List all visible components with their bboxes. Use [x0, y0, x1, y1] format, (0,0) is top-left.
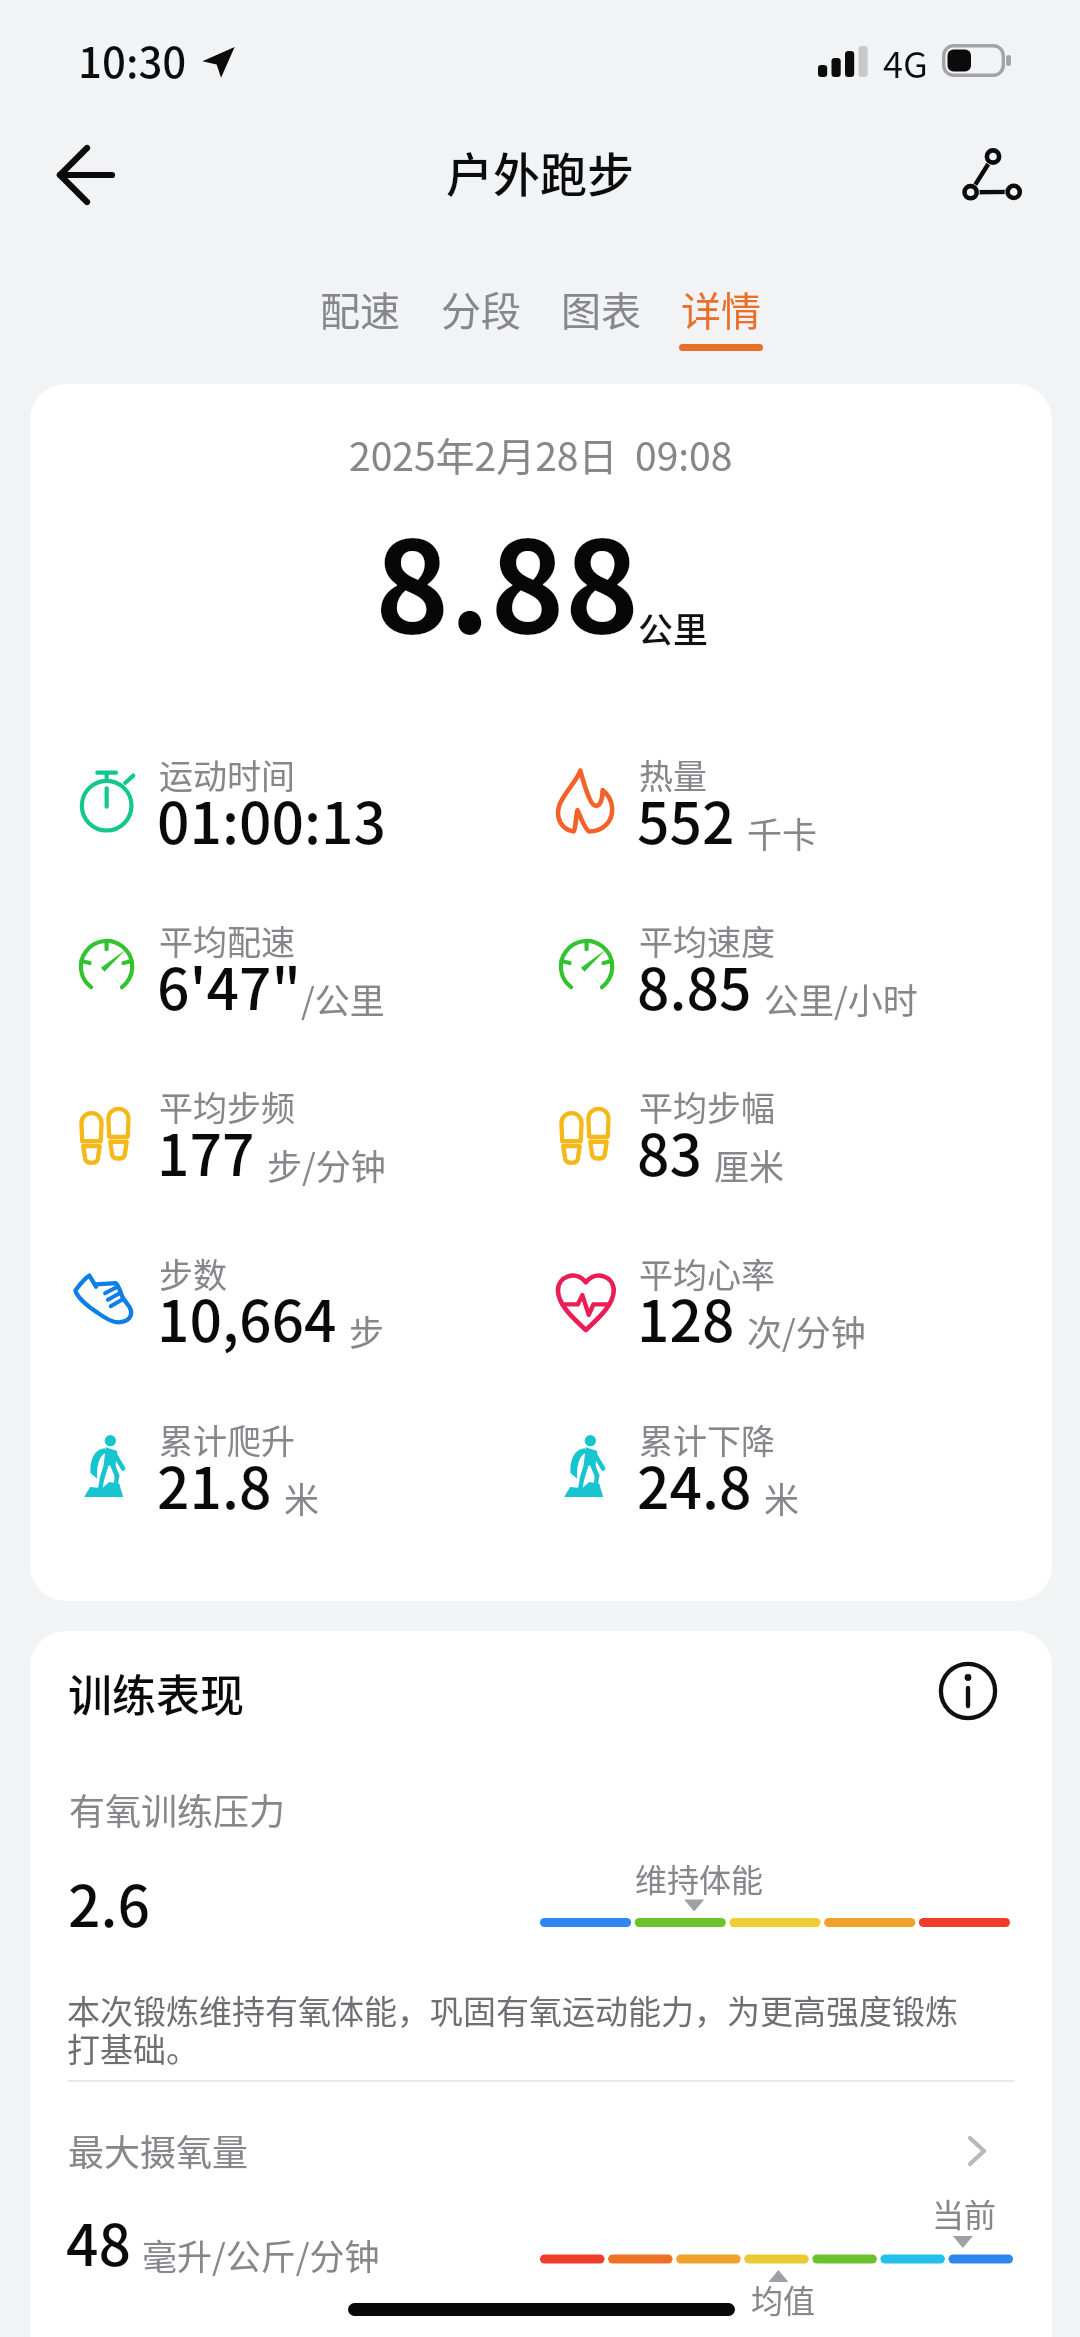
staticText: 米: [284, 1472, 320, 1523]
staticText: 平均步幅: [639, 1082, 775, 1131]
staticText: 步/分钟: [267, 1139, 386, 1190]
staticText: 均值: [751, 2276, 816, 2322]
staticText: 次/分钟: [747, 1305, 866, 1356]
staticText: 步数: [159, 1249, 227, 1298]
staticText: 4G: [883, 36, 928, 88]
staticText: 平均步频: [159, 1082, 295, 1131]
staticText: 10,664: [157, 1276, 337, 1359]
staticText: 累计下降: [639, 1415, 775, 1464]
staticText: 平均心率: [639, 1249, 775, 1298]
staticText: /公里: [301, 973, 385, 1024]
staticText: 8.85: [637, 944, 752, 1027]
staticText: 6'47": [157, 944, 301, 1027]
staticText: 分段: [441, 280, 521, 338]
staticText: 552: [637, 778, 735, 861]
staticText: 详情: [681, 280, 761, 338]
staticText: 最大摄氧量: [68, 2124, 249, 2176]
staticText: 8.88: [375, 487, 639, 669]
staticText: 图表: [561, 280, 641, 338]
staticText: 24.8: [637, 1443, 752, 1526]
staticText: 公里/小时: [764, 973, 918, 1024]
staticText: 公里: [638, 602, 709, 653]
staticText: 有氧训练压力: [69, 1783, 286, 1835]
button[interactable]: Share: [950, 137, 1030, 217]
staticText: 128: [637, 1276, 735, 1359]
button[interactable]: Info: [934, 1657, 1002, 1725]
staticText: 毫升/公斤/分钟: [142, 2229, 380, 2280]
staticText: 01:00:13: [157, 778, 386, 861]
button[interactable]: 最大摄氧量: [68, 2110, 1015, 2194]
staticText: 运动时间: [159, 750, 295, 799]
staticText: 配速: [320, 280, 400, 338]
button[interactable]: 分段: [423, 272, 539, 360]
staticText: 10:30: [78, 29, 187, 90]
staticText: 21.8: [157, 1443, 272, 1526]
staticText: 177: [157, 1110, 255, 1193]
button[interactable]: 图表: [543, 272, 659, 360]
staticText: 平均配速: [159, 916, 295, 965]
staticText: 2025年2月28日 09:08: [349, 426, 733, 482]
staticText: 米: [764, 1472, 800, 1523]
button[interactable]: 详情: [663, 272, 779, 360]
staticText: 累计爬升: [159, 1415, 295, 1464]
staticText: 48: [66, 2200, 131, 2283]
staticText: 2.6: [68, 1861, 150, 1944]
staticText: 步: [349, 1305, 385, 1356]
button[interactable]: Back: [45, 137, 121, 213]
staticText: 本次锻炼维持有氧体能，巩固有氧运动能力，为更高强度锻炼 打基础。: [67, 1986, 958, 2072]
staticText: 83: [637, 1110, 702, 1193]
staticText: 户外跑步: [446, 137, 634, 205]
staticText: 厘米: [714, 1139, 785, 1190]
other: Open VO2 max details: [945, 2119, 1009, 2183]
staticText: 维持体能: [635, 1855, 764, 1901]
staticText: 千卡: [747, 807, 818, 858]
staticText: 平均速度: [639, 916, 775, 965]
staticText: 热量: [639, 750, 707, 799]
staticText: 当前: [932, 2190, 997, 2236]
button[interactable]: 配速: [302, 272, 418, 360]
staticText: 训练表现: [68, 1661, 244, 1725]
